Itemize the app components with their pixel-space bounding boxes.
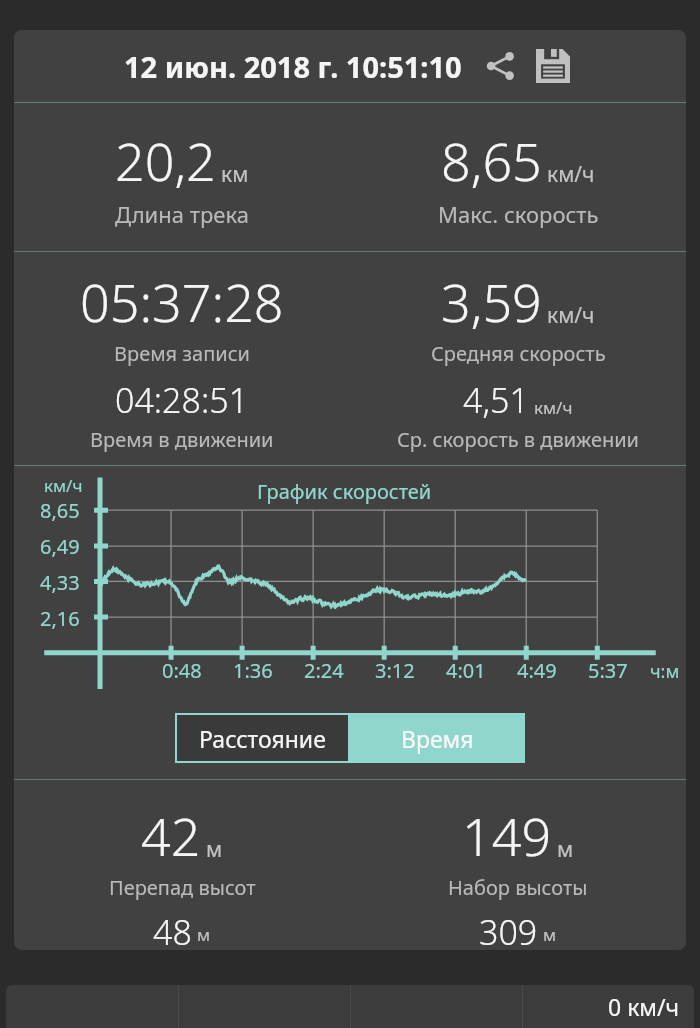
staticText: Перепад высот <box>109 874 256 901</box>
staticText: м <box>197 923 211 946</box>
staticText: м <box>206 835 223 864</box>
staticText: Расстояние <box>199 723 326 754</box>
button[interactable]: Расстояние <box>177 715 348 761</box>
staticText: 20,2 <box>115 125 216 196</box>
staticText: км/ч <box>534 396 573 419</box>
staticText: 48 <box>153 909 192 950</box>
staticText: 8,65 <box>441 125 542 196</box>
staticText: 2:24 <box>304 657 344 684</box>
staticText: Время записи <box>114 340 250 367</box>
staticText: 1:36 <box>233 657 273 684</box>
staticText: 4,51 <box>463 377 529 423</box>
staticText: км/ч <box>547 160 595 189</box>
button[interactable]: Save <box>530 43 576 89</box>
staticText: 0 км/ч <box>608 991 680 1022</box>
staticText: 04:28:51 <box>115 377 249 423</box>
staticText: км <box>221 160 249 189</box>
staticText: км/ч <box>547 301 595 330</box>
staticText: 4:01 <box>446 657 486 684</box>
staticText: 6,49 <box>40 533 80 560</box>
staticText: 3:12 <box>375 657 415 684</box>
staticText: 4,33 <box>40 569 80 596</box>
staticText: Макс. скорость <box>438 199 599 229</box>
staticText: 8,65 <box>40 497 80 524</box>
staticText: 309 <box>479 909 538 950</box>
staticText: м <box>543 923 557 946</box>
button[interactable]: Share <box>478 44 522 88</box>
staticText: 5:37 <box>588 657 628 684</box>
staticText: Время <box>401 723 474 754</box>
staticText: 2,16 <box>40 605 80 632</box>
staticText: 0:48 <box>162 657 202 684</box>
staticText: Ср. скорость в движении <box>397 426 640 453</box>
button[interactable]: Время <box>350 713 525 763</box>
staticText: ч:м <box>650 659 680 684</box>
staticText: 3,59 <box>441 266 542 337</box>
staticText: График скоростей <box>257 478 432 505</box>
staticText: Длина трека <box>115 199 249 229</box>
staticText: Время в движении <box>90 426 274 453</box>
staticText: Набор высоты <box>448 874 588 901</box>
staticText: 05:37:28 <box>80 266 284 337</box>
staticText: км/ч <box>44 474 83 497</box>
staticText: 4:49 <box>517 657 557 684</box>
staticText: 12 июн. 2018 г. 10:51:10 <box>124 47 462 86</box>
staticText: 42 <box>141 800 201 871</box>
button[interactable]: 0 км/ч <box>523 985 694 1028</box>
staticText: м <box>557 835 574 864</box>
staticText: Средняя скорость <box>431 340 606 367</box>
staticText: 149 <box>462 800 552 871</box>
